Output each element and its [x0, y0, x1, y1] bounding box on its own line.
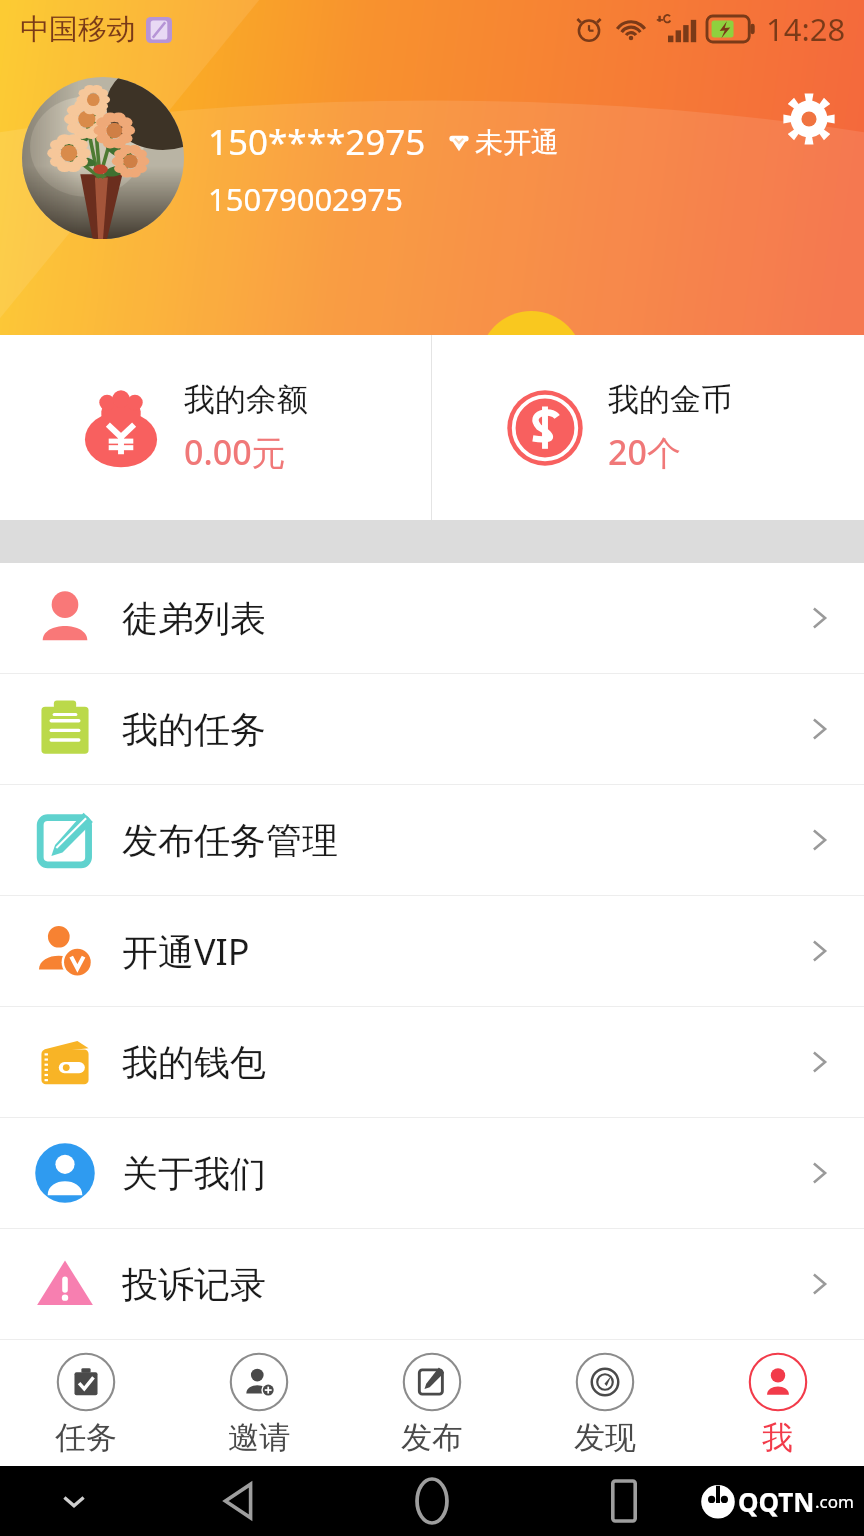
- staticText: 邀请: [228, 1418, 290, 1457]
- staticText: 我的金币: [608, 380, 732, 419]
- button[interactable]: 未开通: [446, 125, 559, 160]
- staticText: 投诉记录: [122, 1262, 266, 1307]
- button[interactable]: 我的钱包: [0, 1007, 864, 1117]
- staticText: 我的余额: [184, 380, 308, 419]
- button[interactable]: Home: [400, 1469, 464, 1533]
- button[interactable]: 我的金币: [432, 335, 864, 520]
- staticText: 发布任务管理: [122, 818, 338, 863]
- staticText: 开通VIP: [122, 927, 250, 976]
- staticText: 15079002975: [208, 178, 404, 220]
- staticText: 徒弟列表: [122, 596, 266, 641]
- button[interactable]: 任务: [0, 1340, 172, 1466]
- staticText: QQTN: [738, 1484, 815, 1519]
- staticText: 未开通: [475, 125, 559, 160]
- button[interactable]: 发布任务管理: [0, 785, 864, 895]
- staticText: 发布: [401, 1418, 463, 1457]
- staticText: 14:28: [766, 8, 846, 50]
- button[interactable]: 发现: [518, 1340, 691, 1466]
- button[interactable]: 开通VIP: [0, 896, 864, 1006]
- button[interactable]: Hide: [48, 1475, 100, 1527]
- staticText: 我的钱包: [122, 1040, 266, 1085]
- button[interactable]: Back: [206, 1469, 270, 1533]
- staticText: 0.00元: [184, 429, 286, 475]
- staticText: 20个: [608, 429, 681, 475]
- button[interactable]: 我的任务: [0, 674, 864, 784]
- staticText: .com: [815, 1490, 854, 1513]
- staticText: 我的任务: [122, 707, 266, 752]
- button[interactable]: 发布: [345, 1340, 518, 1466]
- button[interactable]: 投诉记录: [0, 1229, 864, 1339]
- button[interactable]: Settings: [778, 88, 840, 150]
- button[interactable]: 邀请: [172, 1340, 345, 1466]
- staticText: 我: [762, 1418, 793, 1457]
- button[interactable]: 关于我们: [0, 1118, 864, 1228]
- button[interactable]: 我的余额: [0, 335, 431, 520]
- button[interactable]: 徒弟列表: [0, 563, 864, 673]
- staticText: 任务: [55, 1418, 117, 1457]
- staticText: 150****2975: [208, 118, 426, 166]
- button[interactable]: 我: [691, 1340, 864, 1466]
- staticText: 关于我们: [122, 1151, 266, 1196]
- staticText: 发现: [574, 1418, 636, 1457]
- staticText: 中国移动: [20, 11, 136, 48]
- button[interactable]: Recents: [592, 1469, 656, 1533]
- button[interactable]: [22, 77, 184, 239]
